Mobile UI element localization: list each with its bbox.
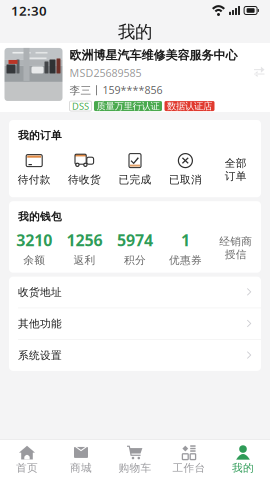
staticText: 我的: [118, 21, 152, 43]
staticText: 我的钱包: [18, 210, 62, 223]
button[interactable]: 收货地址: [9, 277, 261, 308]
staticText: 收货地址: [18, 286, 62, 299]
button[interactable]: 经销商: [211, 235, 261, 261]
button[interactable]: 已完成: [110, 153, 160, 186]
staticText: 欧洲博星汽车维修美容服务中心: [69, 48, 237, 63]
staticText: 积分: [124, 254, 146, 267]
button[interactable]: 商城: [54, 440, 108, 479]
staticText: 余额: [23, 254, 45, 267]
staticText: 已取消: [169, 173, 202, 186]
button[interactable]: 待付款: [9, 153, 59, 186]
staticText: 待收货: [68, 173, 101, 186]
staticText: 1: [181, 229, 190, 250]
staticText: 我的: [232, 461, 254, 474]
button[interactable]: 其他功能: [9, 308, 261, 340]
staticText: 首页: [16, 461, 38, 474]
staticText: 数据认证店: [167, 100, 212, 112]
staticText: 12:30: [11, 2, 47, 19]
staticText: 优惠券: [169, 254, 202, 267]
button[interactable]: 欧洲博星汽车维修美容服务中心: [0, 43, 270, 112]
button[interactable]: 工作台: [162, 440, 216, 479]
button[interactable]: 3210: [9, 229, 59, 267]
staticText: 经销商: [219, 235, 252, 248]
staticText: 返利: [74, 254, 96, 267]
button[interactable]: 首页: [0, 440, 54, 479]
button[interactable]: 我的: [216, 440, 270, 479]
staticText: 商城: [70, 461, 92, 474]
staticText: 系统设置: [18, 349, 62, 362]
button[interactable]: 1256: [59, 229, 110, 267]
staticText: 李三丨159****856: [69, 83, 162, 97]
button[interactable]: 已取消: [160, 153, 211, 186]
button[interactable]: 5974: [110, 229, 160, 267]
staticText: 3210: [16, 229, 52, 250]
staticText: 购物车: [118, 461, 151, 474]
button[interactable]: 全部: [211, 157, 261, 183]
button[interactable]: 系统设置: [9, 340, 261, 371]
staticText: DSS: [72, 100, 89, 112]
staticText: 我的订单: [18, 129, 62, 142]
staticText: 5974: [117, 229, 153, 250]
staticText: 质量万里行认证: [96, 100, 159, 112]
button[interactable]: 待收货: [59, 153, 110, 186]
button[interactable]: 1: [160, 229, 211, 267]
staticText: 其他功能: [18, 317, 62, 330]
staticText: 全部: [225, 157, 247, 170]
staticText: 1256: [67, 229, 103, 250]
staticText: 已完成: [118, 173, 151, 186]
staticText: MSD25689585: [69, 66, 141, 80]
staticText: 待付款: [18, 173, 51, 186]
staticText: 订单: [225, 170, 247, 183]
staticText: 工作台: [172, 461, 205, 474]
button[interactable]: 购物车: [108, 440, 162, 479]
staticText: 授信: [225, 248, 247, 261]
